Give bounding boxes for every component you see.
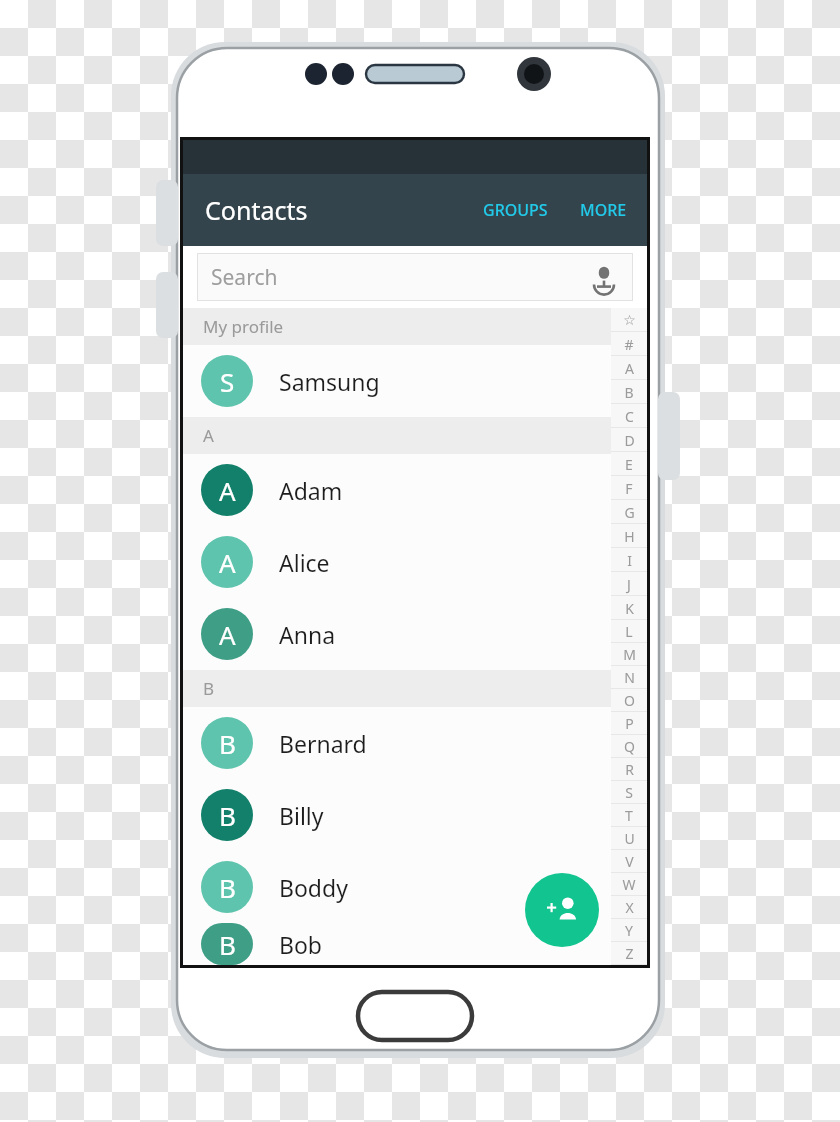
button[interactable]: A [183, 454, 611, 526]
staticText: # [624, 335, 634, 354]
staticText: B [219, 798, 236, 833]
button[interactable]: Q [611, 735, 647, 758]
staticText: O [624, 691, 635, 710]
button[interactable]: H [611, 524, 647, 548]
button[interactable]: A [183, 526, 611, 598]
staticText: Billy [279, 800, 324, 831]
staticText: P [625, 714, 634, 733]
button[interactable]: B [183, 851, 611, 923]
button[interactable]: Voice search [589, 262, 619, 292]
button[interactable]: J [611, 572, 647, 596]
staticText: G [624, 503, 635, 522]
button[interactable]: K [611, 596, 647, 620]
button[interactable]: Search [197, 253, 633, 301]
button[interactable]: B [183, 923, 611, 965]
button[interactable]: N [611, 666, 647, 689]
button[interactable]: V [611, 850, 647, 873]
button[interactable]: Z [611, 942, 647, 965]
staticText: Y [625, 921, 633, 940]
staticText: D [624, 431, 635, 450]
button[interactable]: C [611, 404, 647, 428]
button[interactable]: G [611, 500, 647, 524]
staticText: A [203, 424, 214, 447]
button[interactable]: W [611, 873, 647, 896]
staticText: Search [211, 263, 278, 292]
button[interactable]: X [611, 896, 647, 919]
button[interactable]: Add contact [525, 873, 599, 947]
staticText: U [624, 829, 635, 848]
staticText: I [627, 551, 632, 570]
staticText: R [625, 760, 634, 779]
button[interactable]: F [611, 476, 647, 500]
button[interactable]: B [183, 707, 611, 779]
button[interactable]: S [611, 781, 647, 804]
staticText: K [625, 599, 634, 618]
staticText: E [625, 455, 633, 474]
staticText: Bernard [279, 728, 367, 759]
staticText: Contacts [205, 193, 308, 227]
staticText: L [625, 622, 633, 641]
button[interactable]: S [183, 345, 611, 417]
button[interactable]: ☆ [611, 308, 647, 332]
staticText: B [624, 383, 634, 402]
button[interactable]: L [611, 620, 647, 643]
staticText: B [219, 927, 236, 962]
button[interactable]: Y [611, 919, 647, 942]
staticText: My profile [203, 315, 284, 338]
button[interactable]: M [611, 643, 647, 666]
button[interactable]: B [611, 380, 647, 404]
button[interactable]: GROUPS [475, 189, 556, 231]
staticText: F [625, 479, 633, 498]
staticText: B [219, 726, 236, 761]
button[interactable]: R [611, 758, 647, 781]
staticText: A [219, 617, 236, 652]
staticText: X [625, 898, 634, 917]
button[interactable]: B [183, 779, 611, 851]
staticText: J [627, 575, 631, 594]
staticText: ☆ [623, 312, 636, 328]
staticText: Samsung [279, 366, 380, 397]
staticText: S [220, 364, 235, 399]
button[interactable]: U [611, 827, 647, 850]
staticText: Alice [279, 547, 330, 578]
button[interactable]: T [611, 804, 647, 827]
staticText: T [625, 806, 633, 825]
button[interactable]: I [611, 548, 647, 572]
staticText: Anna [279, 619, 336, 650]
staticText: V [625, 852, 634, 871]
button[interactable]: A [611, 356, 647, 380]
staticText: N [624, 668, 635, 687]
button[interactable]: A [183, 598, 611, 670]
staticText: C [625, 407, 634, 426]
staticText: W [622, 875, 636, 894]
staticText: H [624, 527, 635, 546]
staticText: Z [625, 944, 634, 963]
button[interactable]: E [611, 452, 647, 476]
button[interactable]: D [611, 428, 647, 452]
button[interactable]: # [611, 332, 647, 356]
staticText: B [219, 870, 236, 905]
button[interactable]: O [611, 689, 647, 712]
staticText: Adam [279, 475, 343, 506]
staticText: Q [624, 737, 635, 756]
button[interactable]: P [611, 712, 647, 735]
button[interactable]: MORE [572, 189, 635, 231]
staticText: A [219, 473, 236, 508]
staticText: A [219, 545, 236, 580]
staticText: GROUPS [483, 199, 548, 221]
staticText: A [625, 359, 634, 378]
staticText: S [625, 783, 633, 802]
staticText: B [203, 677, 215, 700]
staticText: M [623, 645, 636, 664]
staticText: Bob [279, 929, 323, 960]
staticText: MORE [580, 199, 627, 221]
staticText: Boddy [279, 872, 348, 903]
